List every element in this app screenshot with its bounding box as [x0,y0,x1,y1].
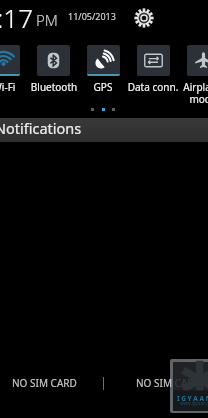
staticText: Notifications [0,118,82,138]
staticText: 11/05/2013 [68,10,116,22]
button[interactable]: Notifications [0,118,208,142]
staticText: I G Y A A N [177,394,208,403]
staticText: www.igyaan.in [180,400,208,406]
button[interactable]: Data connection [137,45,170,76]
staticText: :17 [0,0,34,35]
staticText: PM [36,10,58,30]
button[interactable]: Wi-Fi [0,45,20,76]
staticText: NO SIM CARD [12,376,77,390]
staticText: Wi-Fi [0,80,49,94]
button[interactable]: Bluetooth [37,45,70,76]
button[interactable]: GPS [87,45,120,76]
staticText: Bluetooth [9,80,99,94]
staticText: NO SIM CARD [136,376,201,390]
button[interactable]: Airplane mode [187,45,208,76]
staticText: Data conn. [108,80,198,94]
staticText: GPS [58,80,148,94]
staticText: Airplane mode [158,80,208,106]
button[interactable]: Settings [135,9,153,27]
